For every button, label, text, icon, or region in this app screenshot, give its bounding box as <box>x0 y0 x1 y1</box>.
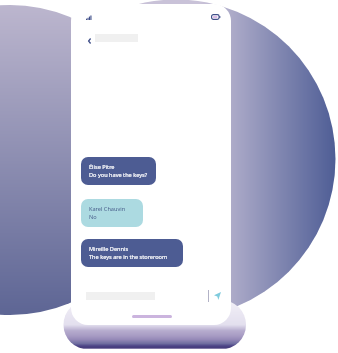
staticText: Élise Pitre <box>89 163 115 171</box>
button[interactable]: Élise Pitre <box>81 157 156 185</box>
staticText: Karel Chauvin <box>89 205 126 213</box>
button[interactable]: Karel Chauvin <box>81 199 143 227</box>
button[interactable]: Mireille Dennis <box>81 239 183 267</box>
staticText: No <box>89 213 97 221</box>
other: Battery <box>211 14 220 20</box>
staticText: Mireille Dennis <box>89 245 129 253</box>
button[interactable]: Back <box>82 31 96 51</box>
staticText: Do you have the keys? <box>89 171 148 179</box>
button[interactable]: Send <box>83 287 226 304</box>
staticText: The keys are in the storeroom <box>89 253 168 261</box>
button[interactable]: Send <box>212 290 223 301</box>
